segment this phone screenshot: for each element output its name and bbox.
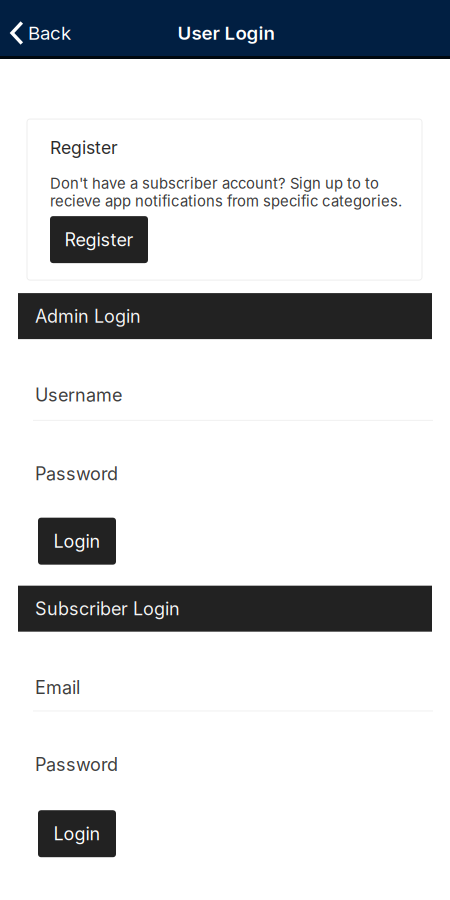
button[interactable]: Login	[38, 810, 116, 857]
button[interactable]: Password	[0, 421, 450, 485]
staticText: Admin Login	[35, 305, 141, 327]
button[interactable]: Password	[0, 711, 450, 775]
button[interactable]: Login	[38, 518, 116, 565]
button[interactable]: Email	[0, 632, 450, 711]
staticText: Password	[35, 463, 118, 485]
staticText: Subscriber Login	[35, 598, 180, 620]
staticText: Register	[50, 137, 118, 158]
staticText: Back	[28, 22, 71, 44]
staticText: User Login	[177, 22, 274, 44]
staticText: Login	[53, 823, 100, 845]
staticText: Email	[35, 677, 80, 698]
staticText: Username	[35, 384, 122, 406]
button[interactable]: Username	[0, 339, 450, 421]
button[interactable]: Register	[50, 216, 148, 263]
button[interactable]: Back	[0, 17, 83, 49]
staticText: Don't have a subscriber account? Sign up…	[50, 174, 402, 210]
staticText: Register	[64, 229, 133, 250]
staticText: Password	[35, 753, 118, 775]
staticText: Login	[53, 530, 100, 552]
